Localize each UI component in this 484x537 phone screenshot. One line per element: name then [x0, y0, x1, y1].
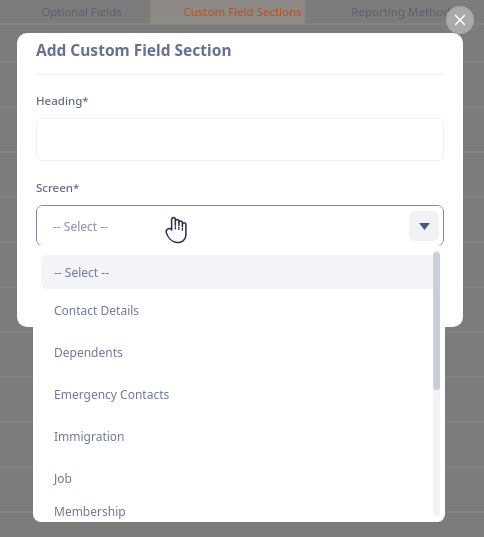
staticText: Emergency Contacts [54, 386, 170, 402]
button[interactable]: Job [33, 457, 445, 499]
staticText: Reporting Methods [351, 4, 456, 20]
button[interactable]: -- Select -- [41, 255, 437, 289]
staticText: Heading* [36, 93, 89, 109]
staticText: Immigration [54, 428, 125, 444]
button[interactable]: Emergency Contacts [33, 373, 445, 415]
button[interactable]: Close [446, 6, 474, 34]
button[interactable]: Immigration [33, 415, 445, 457]
button[interactable]: Dependents [33, 331, 445, 373]
staticText: -- Select -- [54, 264, 110, 280]
button[interactable]: Membership [33, 499, 445, 522]
staticText: Add Custom Field Section [36, 39, 232, 60]
staticText: Optional Fields [41, 4, 122, 20]
button[interactable]: Reporting Methods [323, 0, 484, 24]
button[interactable]: Contact Details [33, 289, 445, 331]
button[interactable]: -- Select -- [36, 205, 444, 246]
staticText: Custom Field Sections [183, 4, 302, 20]
staticText: Membership [54, 503, 126, 519]
staticText: -- Select -- [53, 218, 109, 234]
staticText: Job [54, 470, 72, 486]
staticText: Screen* [36, 180, 80, 196]
staticText: Dependents [54, 344, 123, 360]
button[interactable]: Optional Fields [0, 0, 162, 24]
staticText: Contact Details [54, 302, 140, 318]
button[interactable]: Open dropdown [409, 211, 439, 241]
button[interactable]: Custom Field Sections [162, 0, 323, 24]
button[interactable] [36, 118, 444, 161]
